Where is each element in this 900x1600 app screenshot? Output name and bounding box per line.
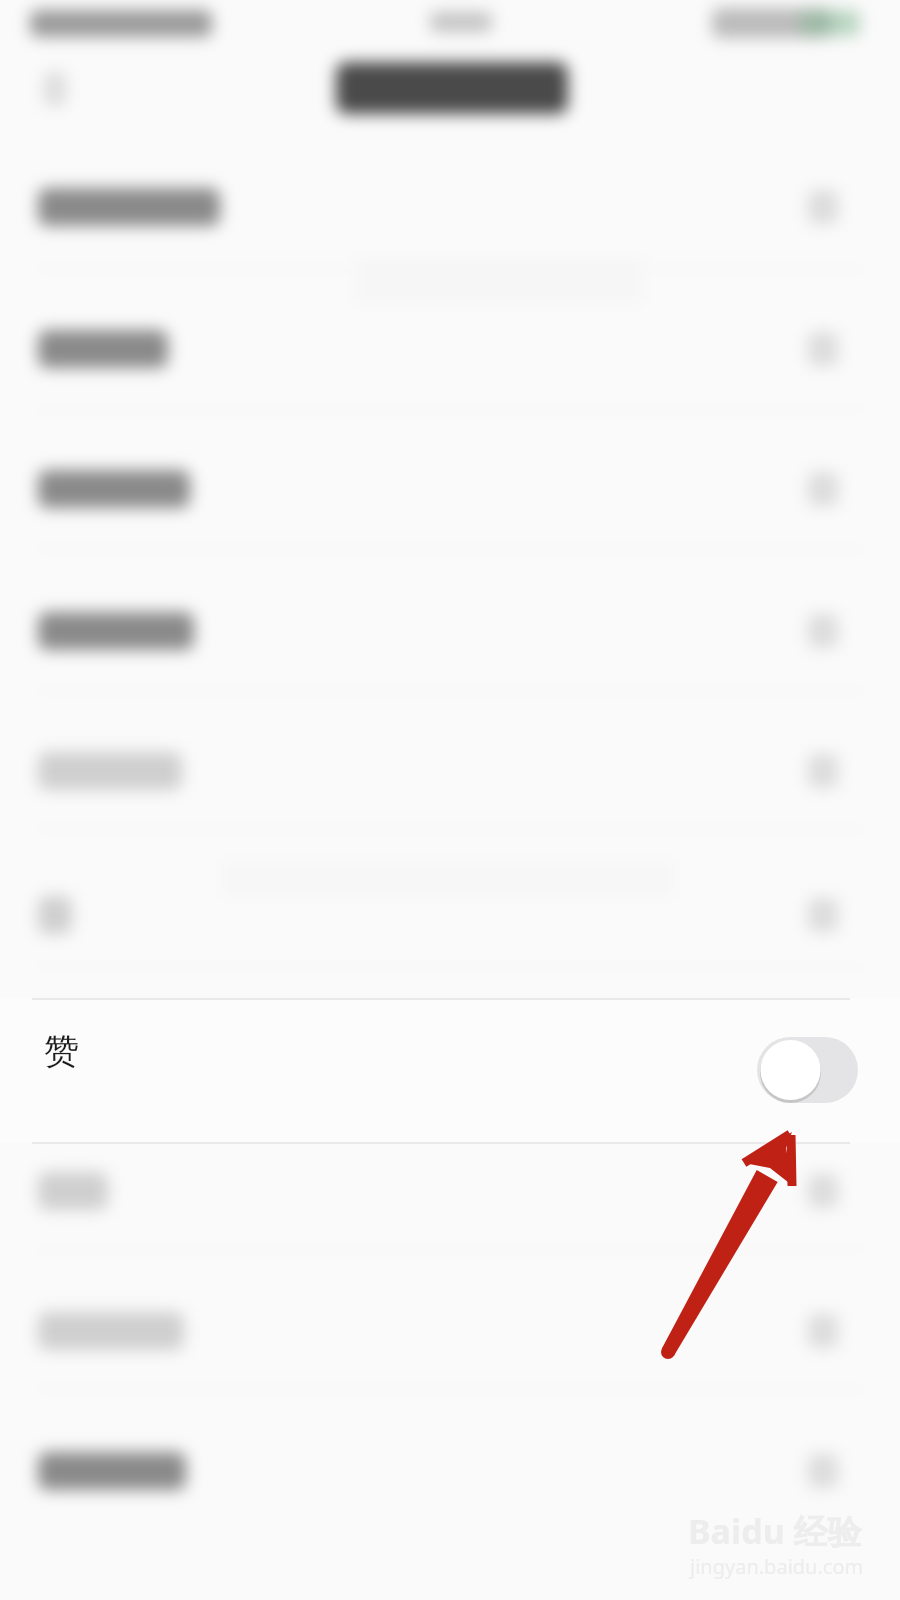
staticText: 赞 — [44, 1029, 79, 1073]
staticText: jingyan.baidu.com — [690, 1553, 864, 1580]
button[interactable] — [0, 999, 900, 1143]
staticText: Baidu 经验 — [688, 1508, 862, 1554]
button[interactable]: 赞 toggle, off — [757, 1037, 858, 1103]
